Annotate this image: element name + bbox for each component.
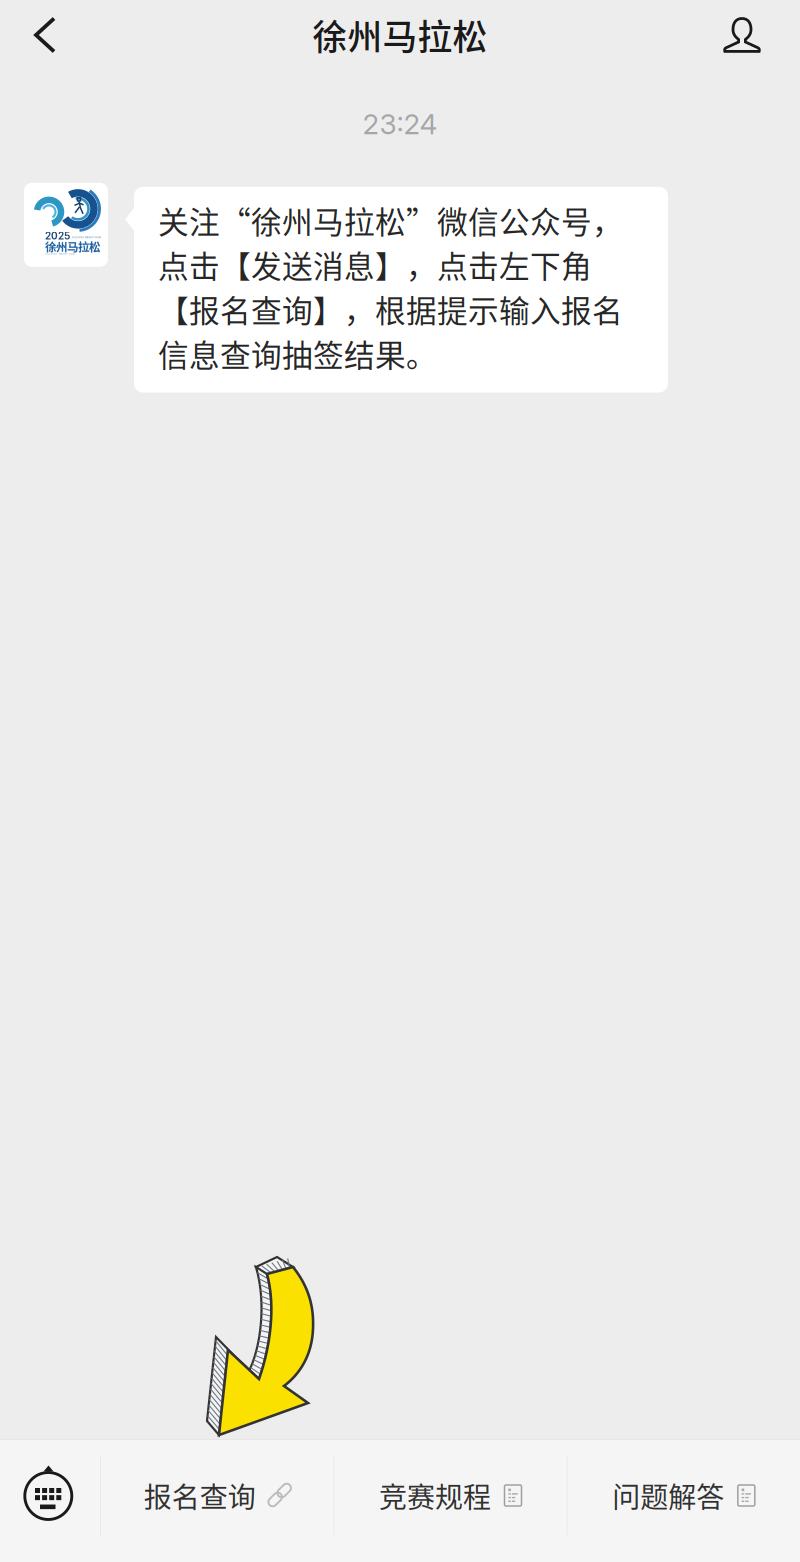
staticText: 2025 [45, 230, 70, 242]
button[interactable]: 报名查询 [101, 1440, 333, 1551]
button[interactable]: Keyboard [0, 1440, 100, 1551]
staticText: 23:24 [362, 107, 437, 141]
staticText: 关注“徐州马拉松”微信公众号， 点击【发送消息】，点击左下角 【报名查询】，根据… [158, 198, 623, 375]
staticText: 徐州马拉松 [45, 238, 100, 255]
button[interactable]: Contact info [703, 2, 800, 68]
staticText: 徐州马拉松 [312, 10, 487, 60]
staticText: XUZHOU MARATHON [72, 236, 101, 239]
staticText: 竞赛规程 [379, 1475, 491, 1516]
button[interactable]: 问题解答 [568, 1440, 800, 1551]
button[interactable]: 竞赛规程 [334, 1440, 567, 1551]
staticText: 问题解答 [612, 1475, 724, 1516]
staticText: 报名查询 [144, 1475, 256, 1516]
button[interactable]: Back [0, 2, 77, 67]
staticText: XUZHOU MARATHON [45, 252, 75, 255]
